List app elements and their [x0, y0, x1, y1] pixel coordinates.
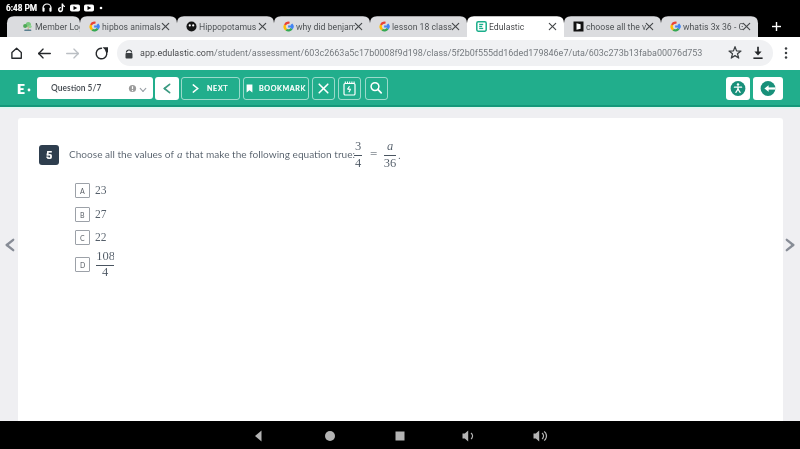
staticText: Question 5/7 — [51, 83, 102, 93]
staticText: /student/assessment/603c2663a5c17b0008f9… — [214, 48, 703, 59]
button[interactable]: Volume down — [459, 423, 479, 447]
button[interactable]: BOOKMARK — [243, 77, 309, 100]
staticText: 23 — [95, 184, 107, 197]
staticText: hipbos animals - — [102, 22, 162, 32]
button[interactable]: D — [75, 257, 165, 272]
button[interactable]: Search — [365, 77, 388, 100]
button[interactable]: Close tab — [643, 20, 656, 33]
button[interactable]: Close tab — [159, 20, 172, 33]
staticText: 5 — [46, 149, 53, 162]
staticText: BOOKMARK — [259, 84, 306, 93]
button[interactable]: Close — [312, 77, 335, 100]
staticText: D — [80, 261, 86, 269]
button[interactable]: Close tab — [256, 20, 269, 33]
staticText: A — [80, 187, 85, 195]
button[interactable]: Previous question — [3, 238, 17, 252]
button[interactable]: Downloads — [750, 45, 766, 61]
staticText: 36 — [360, 156, 420, 170]
staticText: B — [80, 211, 85, 219]
button[interactable]: Next question — [783, 238, 797, 252]
staticText: NEXT — [207, 84, 229, 93]
staticText: 4 — [328, 156, 388, 170]
staticText: 27 — [95, 208, 107, 221]
staticText: choose all the va — [586, 22, 646, 32]
button[interactable]: NEXT — [181, 77, 240, 100]
button[interactable]: B — [75, 207, 165, 222]
button[interactable]: Member Log — [7, 16, 80, 37]
button[interactable]: Close tab — [546, 20, 559, 33]
staticText: Edulastic — [489, 22, 525, 32]
button[interactable]: Log out — [753, 77, 783, 100]
staticText: . — [398, 149, 401, 161]
staticText: = — [370, 146, 378, 160]
staticText: app.edulastic.com — [140, 48, 214, 59]
staticText: 108 — [96, 249, 114, 263]
button[interactable]: New tab — [769, 19, 784, 34]
button[interactable]: Close tab — [352, 20, 365, 33]
button[interactable]: Close tab — [740, 20, 753, 33]
button[interactable]: Back — [249, 423, 269, 447]
staticText: 6:48 PM — [6, 3, 37, 13]
button[interactable]: More options — [778, 45, 794, 61]
staticText: lesson 18 classw — [392, 22, 452, 32]
button[interactable]: Close tab — [449, 20, 462, 33]
staticText: a — [177, 148, 183, 160]
button[interactable]: why did benjami — [274, 16, 370, 37]
staticText: Member Log — [35, 22, 80, 32]
staticText: Hippopotamus | — [199, 22, 259, 32]
button[interactable]: choose all the va — [564, 16, 661, 37]
button[interactable]: whatis 3x 36 - Go — [661, 16, 758, 37]
button[interactable]: lesson 18 classw — [370, 16, 467, 37]
button[interactable]: A — [75, 183, 165, 198]
staticText: C — [80, 234, 85, 242]
button[interactable]: Accessibility — [726, 77, 750, 100]
staticText: 4 — [96, 265, 114, 279]
button[interactable]: app.edulastic.com — [117, 40, 773, 66]
button[interactable]: Recents — [390, 423, 410, 447]
button[interactable]: Previous — [155, 77, 179, 100]
button[interactable]: Question 5/7 — [37, 77, 153, 99]
staticText: 22 — [95, 231, 107, 244]
button[interactable]: E — [17, 81, 31, 96]
staticText: Choose all the values of — [69, 148, 177, 160]
button[interactable]: Bookmark this tab — [727, 45, 743, 61]
button[interactable]: Edulastic — [467, 16, 564, 37]
button[interactable]: C — [75, 230, 165, 245]
staticText: a — [360, 139, 420, 153]
staticText: that make the following equation true: — [183, 148, 356, 160]
button[interactable]: Calculator — [338, 77, 361, 100]
staticText: 3 — [328, 139, 388, 153]
staticText: why did benjami — [296, 22, 355, 32]
button[interactable]: Home — [320, 423, 340, 447]
button[interactable]: Volume up — [530, 423, 550, 447]
button[interactable]: hipbos animals - — [80, 16, 177, 37]
staticText: E — [17, 81, 25, 96]
staticText: whatis 3x 36 - Go — [683, 22, 743, 32]
button[interactable]: Hippopotamus | — [177, 16, 274, 37]
